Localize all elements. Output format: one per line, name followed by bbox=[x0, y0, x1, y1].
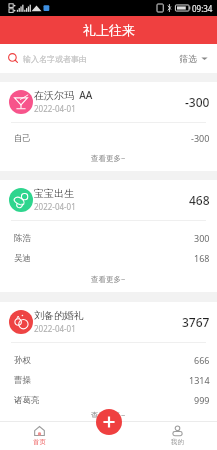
staticText: 2022-04-01 bbox=[34, 103, 76, 114]
staticText: 筛选 bbox=[179, 53, 197, 64]
staticText: 300 bbox=[194, 232, 210, 244]
button[interactable]: 刘备的婚礼 bbox=[0, 302, 217, 421]
staticText: -300 bbox=[191, 132, 210, 144]
staticText: 666 bbox=[194, 354, 210, 366]
staticText: 2022-04-01 bbox=[34, 323, 76, 334]
button[interactable]: Add bbox=[96, 409, 122, 435]
staticText: 查看更多~ bbox=[91, 274, 126, 284]
button[interactable]: 查看更多~ bbox=[0, 148, 217, 171]
staticText: 输入名字或者事由 bbox=[23, 54, 87, 64]
staticText: 2022-04-01 bbox=[34, 201, 76, 212]
staticText: 诸葛亮 bbox=[14, 395, 40, 406]
button[interactable]: 筛选 bbox=[177, 49, 210, 68]
button[interactable]: 首页 bbox=[0, 422, 78, 450]
button[interactable]: 宝宝出生 bbox=[0, 180, 217, 292]
staticText: 查看更多~ bbox=[91, 153, 126, 163]
staticText: 468 bbox=[189, 192, 210, 208]
staticText: 查看更多~ bbox=[91, 410, 126, 418]
staticText: 孙权 bbox=[14, 355, 31, 366]
button[interactable]: 在沃尔玛 AA bbox=[0, 82, 217, 171]
button[interactable]: 我的 bbox=[138, 422, 217, 450]
staticText: 09:34 bbox=[192, 3, 213, 14]
staticText: 曹操 bbox=[14, 375, 31, 386]
staticText: 3767 bbox=[182, 314, 210, 330]
staticText: 刘备的婚礼 bbox=[34, 309, 84, 322]
button[interactable]: 查看更多~ bbox=[0, 410, 217, 421]
staticText: 陈浩 bbox=[14, 233, 31, 244]
staticText: 首页 bbox=[33, 438, 46, 446]
staticText: 在沃尔玛 AA bbox=[34, 88, 93, 102]
staticText: 吴迪 bbox=[14, 253, 31, 264]
staticText: 自己 bbox=[14, 133, 31, 144]
staticText: 999 bbox=[194, 394, 210, 406]
staticText: 我的 bbox=[171, 438, 184, 446]
staticText: -300 bbox=[185, 94, 210, 110]
staticText: 1314 bbox=[189, 374, 210, 386]
button[interactable]: 查看更多~ bbox=[0, 268, 217, 292]
staticText: 168 bbox=[194, 252, 210, 264]
staticText: 宝宝出生 bbox=[34, 187, 74, 200]
staticText: 礼上往来 bbox=[83, 22, 135, 38]
